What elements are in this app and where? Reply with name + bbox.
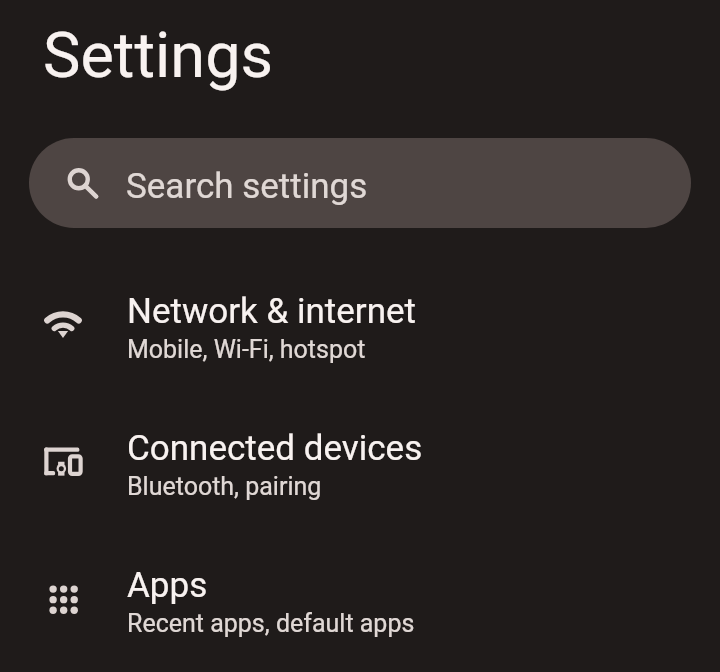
button[interactable]: Connected devices <box>0 403 720 540</box>
staticText: Settings <box>43 19 274 93</box>
button[interactable]: Apps <box>0 540 720 672</box>
other: Apps <box>41 577 85 621</box>
other: Connected devices <box>41 436 85 480</box>
button[interactable]: Network & internet <box>0 266 720 403</box>
staticText: Mobile, Wi-Fi, hotspot <box>127 335 366 364</box>
staticText: Search settings <box>126 166 368 207</box>
button[interactable]: Search <box>29 138 691 228</box>
staticText: Recent apps, default apps <box>127 609 415 638</box>
other: Search <box>66 165 100 199</box>
staticText: Connected devices <box>127 428 423 469</box>
staticText: Bluetooth, pairing <box>127 472 322 501</box>
staticText: Apps <box>127 565 208 606</box>
other: Network & internet <box>41 302 85 346</box>
staticText: Network & internet <box>127 291 417 332</box>
